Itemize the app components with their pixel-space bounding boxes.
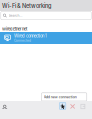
staticText: Wired connection 1 bbox=[14, 33, 47, 38]
staticText: Search... bbox=[8, 14, 22, 18]
staticText: Wired Ethernet bbox=[2, 27, 27, 31]
staticText: Connected bbox=[14, 39, 31, 43]
staticText: Wi-Fi & Networking bbox=[2, 3, 51, 9]
button[interactable]: Wired connection 1 bbox=[0, 32, 92, 44]
button[interactable]: Duplicate connection bbox=[0, 101, 85, 109]
staticText: Add new connection bbox=[44, 95, 77, 99]
button[interactable]: Delete connection bbox=[0, 101, 75, 109]
button[interactable]: Network settings bbox=[0, 101, 7, 110]
button[interactable]: Add new connection bbox=[0, 101, 66, 110]
